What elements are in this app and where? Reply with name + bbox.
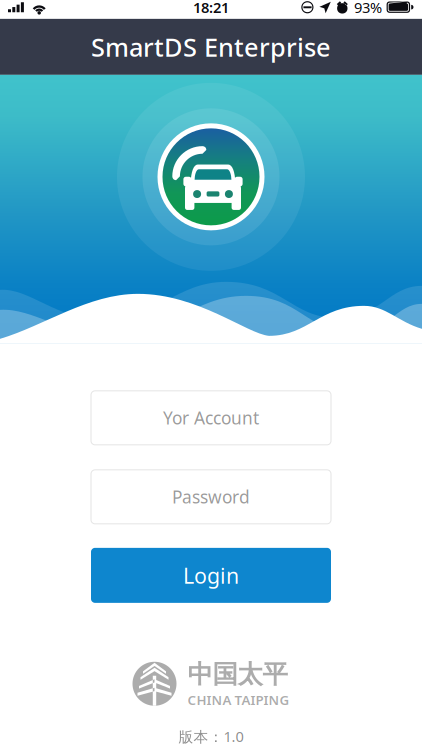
staticText: Yor Account xyxy=(163,406,259,429)
staticText: 中国太平 xyxy=(187,659,287,690)
staticText: CHINA TAIPING xyxy=(187,691,289,709)
staticText: 版本：1.0 xyxy=(178,727,243,746)
staticText: Password xyxy=(172,485,250,508)
staticText: 18:21 xyxy=(193,0,229,17)
staticText: Login xyxy=(183,561,239,589)
button[interactable]: Login xyxy=(91,548,331,603)
button[interactable]: Password xyxy=(91,470,331,524)
staticText: SmartDS Enterprise xyxy=(91,30,331,64)
staticText: 93% xyxy=(354,0,382,17)
button[interactable]: Yor Account xyxy=(91,391,331,445)
